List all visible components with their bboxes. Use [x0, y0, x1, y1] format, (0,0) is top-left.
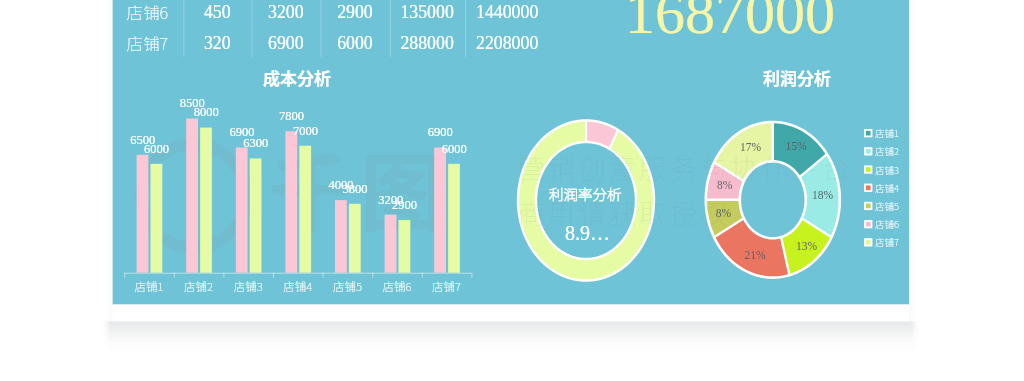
button[interactable] [0, 0, 1024, 381]
